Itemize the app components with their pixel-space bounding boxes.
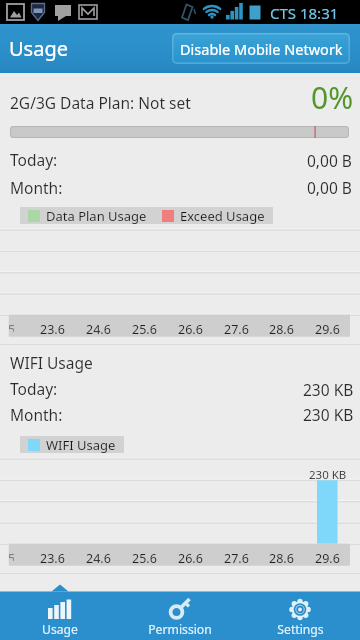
staticText: 230 KB xyxy=(303,379,354,400)
staticText: 25.6 xyxy=(132,321,157,338)
staticText: 26.6 xyxy=(178,321,203,338)
staticText: 23.6 xyxy=(40,550,65,567)
staticText: 24.6 xyxy=(86,321,111,338)
staticText: Settings xyxy=(277,621,324,638)
other: Permission xyxy=(168,599,192,619)
staticText: Today: xyxy=(10,378,58,399)
staticText: 5 xyxy=(9,321,14,332)
staticText: 26.6 xyxy=(178,550,203,567)
staticText: WIFI Usage xyxy=(46,436,116,453)
staticText: 29.6 xyxy=(315,550,340,567)
button[interactable]: Disable Mobile Network xyxy=(172,33,350,64)
staticText: 5 xyxy=(9,550,14,561)
staticText: Usage xyxy=(9,35,68,62)
staticText: 29.6 xyxy=(315,321,340,338)
staticText: 24.6 xyxy=(86,550,111,567)
staticText: 0,00 B xyxy=(307,177,352,198)
staticText: 0% xyxy=(311,77,354,118)
staticText: 0,00 B xyxy=(307,150,352,171)
staticText: Usage xyxy=(42,621,78,638)
staticText: Month: xyxy=(10,177,63,198)
staticText: 230 KB xyxy=(309,467,347,483)
button[interactable]: Settings xyxy=(240,591,360,640)
other: Settings xyxy=(288,599,312,619)
staticText: 230 KB xyxy=(303,404,354,425)
other: Usage xyxy=(48,599,72,619)
staticText: Disable Mobile Network xyxy=(180,39,343,59)
staticText: Today: xyxy=(10,149,58,170)
staticText: 27.6 xyxy=(224,321,249,338)
staticText: 28.6 xyxy=(269,321,294,338)
button[interactable]: Permission xyxy=(120,591,240,640)
staticText: Month: xyxy=(10,404,63,425)
staticText: 27.6 xyxy=(224,550,249,567)
staticText: 25.6 xyxy=(132,550,157,567)
staticText: Data Plan Usage xyxy=(46,207,147,224)
staticText: 28.6 xyxy=(269,550,294,567)
button[interactable]: Usage xyxy=(0,591,120,640)
staticText: CTS 18:31 xyxy=(270,3,339,23)
staticText: WIFI Usage xyxy=(10,352,93,373)
staticText: 23.6 xyxy=(40,321,65,338)
staticText: 2G/3G Data Plan: Not set xyxy=(10,92,191,113)
staticText: Permission xyxy=(148,621,212,638)
staticText: Exceed Usage xyxy=(180,207,265,224)
